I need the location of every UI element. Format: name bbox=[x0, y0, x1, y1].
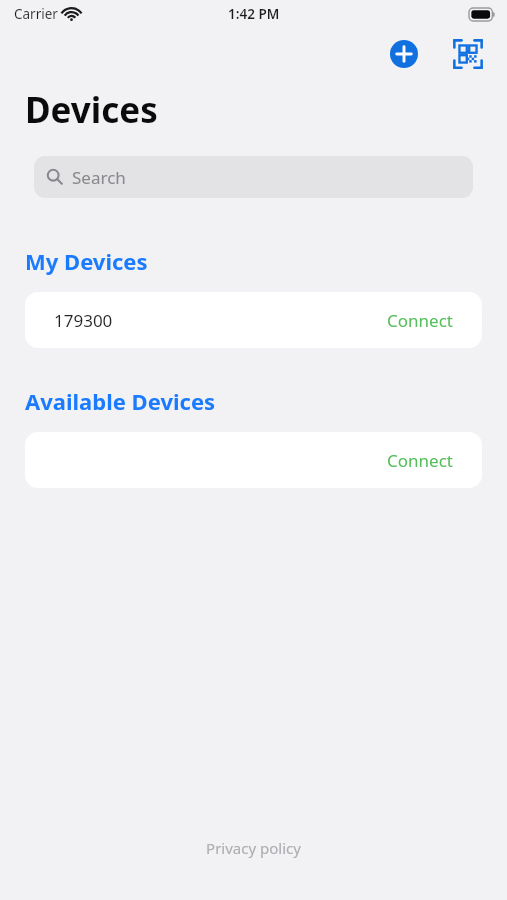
staticText: 179300 bbox=[54, 309, 113, 332]
staticText: Carrier bbox=[14, 5, 58, 23]
staticText: Privacy policy bbox=[206, 838, 301, 858]
button[interactable]: Privacy policy bbox=[196, 834, 311, 862]
staticText: Available Devices bbox=[25, 386, 216, 416]
staticText: Devices bbox=[25, 86, 158, 134]
staticText: Search bbox=[72, 166, 126, 189]
staticText: My Devices bbox=[25, 246, 148, 276]
button[interactable]: 179300 bbox=[25, 292, 482, 348]
staticText: Connect bbox=[387, 309, 453, 332]
staticText: Connect bbox=[387, 449, 453, 472]
button[interactable]: Search bbox=[34, 156, 473, 198]
button[interactable]: Add device bbox=[387, 37, 421, 71]
button[interactable]: Connect bbox=[25, 432, 482, 488]
staticText: 1:42 PM bbox=[228, 5, 280, 23]
button[interactable]: Scan QR code bbox=[451, 37, 485, 71]
